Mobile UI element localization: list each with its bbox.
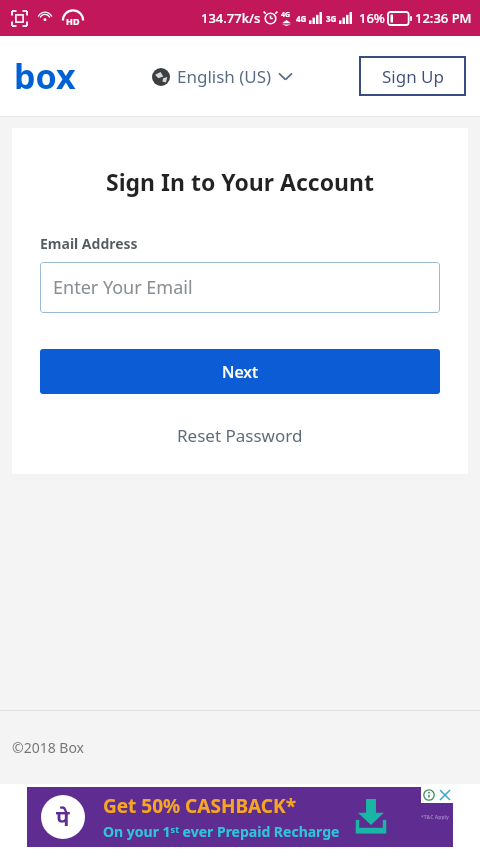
button[interactable]: Reset Password	[12, 420, 468, 451]
button[interactable]: Advertisement: PhonePe cashback offer	[27, 787, 453, 847]
staticText: Email Address	[40, 234, 138, 253]
staticText: Enter Your Email	[53, 275, 193, 300]
button[interactable]: English (US)	[148, 59, 296, 94]
staticText: 4G	[296, 13, 307, 24]
button[interactable]: Close ad	[437, 787, 453, 803]
staticText: Sign In to Your Account	[12, 166, 468, 197]
button[interactable]: Ad information	[421, 787, 437, 803]
button[interactable]: Next	[40, 349, 440, 394]
staticText: box	[14, 53, 76, 99]
button[interactable]: Box logo	[14, 53, 76, 99]
staticText: 4G	[281, 10, 291, 20]
staticText: *T&C Apply	[421, 814, 449, 821]
staticText: Reset Password	[177, 424, 303, 447]
button[interactable]: Sign Up	[359, 56, 466, 96]
staticText: Get 50% CASHBACK*	[103, 793, 296, 819]
staticText: ©2018 Box	[12, 738, 85, 757]
staticText: 16%	[359, 9, 385, 27]
staticText: पे	[56, 802, 70, 832]
staticText: 12:36 PM	[415, 9, 472, 27]
staticText: 3G	[326, 13, 337, 24]
button[interactable]: Enter Your Email	[40, 262, 440, 313]
staticText: 134.77k/s	[201, 9, 261, 27]
staticText: Sign Up	[382, 65, 444, 88]
staticText: HD	[66, 15, 80, 27]
staticText: English (US)	[177, 65, 272, 88]
staticText: Next	[222, 361, 259, 383]
staticText: On your 1ˢᵗ ever Prepaid Recharge	[103, 822, 340, 841]
